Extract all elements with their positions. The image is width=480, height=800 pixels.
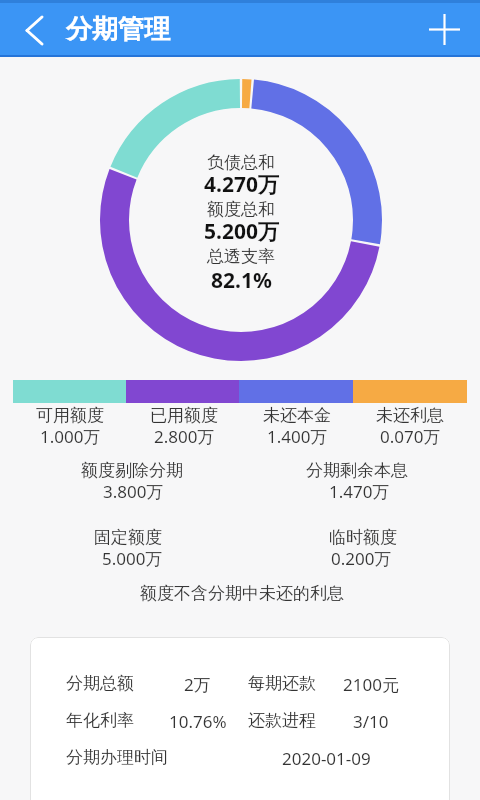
- staticText: 0.200万: [331, 547, 392, 570]
- staticText: 0.070万: [380, 425, 441, 448]
- staticText: 额度总和: [207, 199, 275, 220]
- staticText: 5.000万: [102, 547, 163, 570]
- staticText: 分期办理时间: [66, 747, 168, 768]
- staticText: 还款进程: [248, 710, 316, 731]
- staticText: 负债总和: [207, 152, 275, 173]
- staticText: 82.1%: [211, 266, 272, 295]
- staticText: 额度剔除分期: [81, 460, 183, 481]
- staticText: 2100元: [343, 673, 399, 696]
- staticText: 1.000万: [40, 425, 101, 448]
- staticText: 2.800万: [154, 425, 215, 448]
- staticText: 已用额度: [150, 405, 218, 426]
- staticText: 额度不含分期中未还的利息: [140, 583, 344, 604]
- staticText: 10.76%: [169, 710, 227, 733]
- staticText: 1.400万: [267, 425, 328, 448]
- staticText: 未还利息: [376, 405, 444, 426]
- staticText: 3/10: [353, 710, 389, 733]
- staticText: 临时额度: [329, 527, 397, 548]
- staticText: 每期还款: [248, 673, 316, 694]
- staticText: 3.800万: [103, 480, 164, 503]
- button[interactable]: [409, 3, 480, 55]
- staticText: 分期剩余本息: [306, 460, 408, 481]
- staticText: 2万: [184, 673, 211, 696]
- staticText: 4.270万: [204, 170, 279, 199]
- staticText: 分期管理: [66, 13, 170, 46]
- staticText: 未还本金: [263, 405, 331, 426]
- staticText: 分期总额: [66, 673, 134, 694]
- staticText: 固定额度: [94, 527, 162, 548]
- staticText: 总透支率: [207, 246, 275, 267]
- staticText: 2020-01-09: [282, 747, 371, 770]
- button[interactable]: [0, 3, 58, 55]
- button[interactable]: [30, 637, 450, 800]
- staticText: 年化利率: [66, 710, 134, 731]
- staticText: 5.200万: [204, 217, 279, 246]
- staticText: 可用额度: [36, 405, 104, 426]
- staticText: 1.470万: [329, 480, 390, 503]
